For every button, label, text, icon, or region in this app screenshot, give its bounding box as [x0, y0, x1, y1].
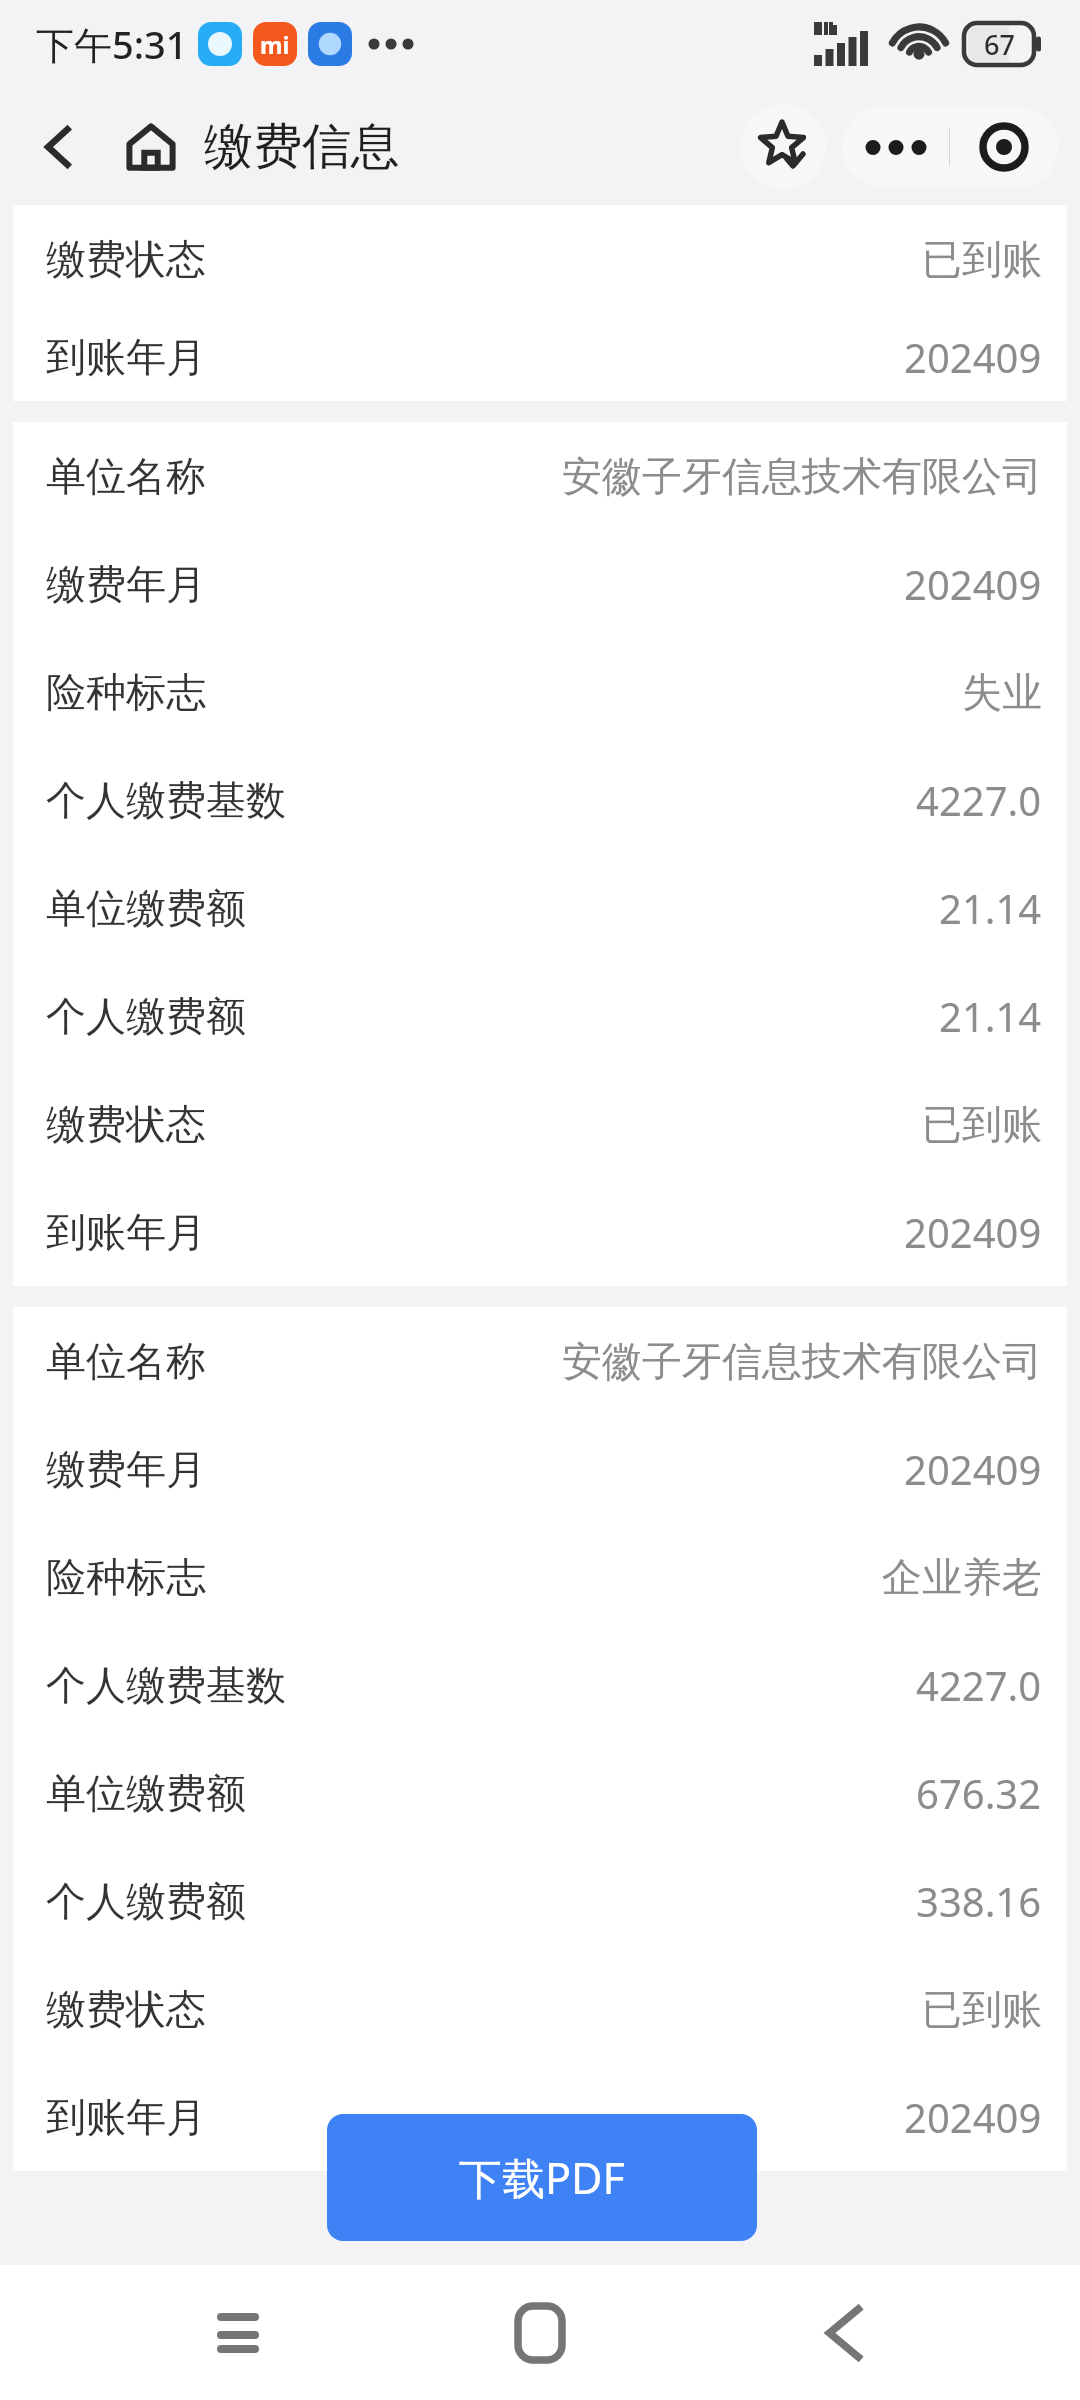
- button[interactable]: 个人缴费基数: [13, 1631, 1067, 1739]
- button[interactable]: More options: [842, 106, 949, 188]
- staticText: 下午5:31: [36, 18, 188, 70]
- button[interactable]: 险种标志: [13, 638, 1067, 746]
- button[interactable]: 缴费状态: [13, 1070, 1067, 1178]
- button[interactable]: 缴费年月: [13, 1415, 1067, 1523]
- staticText: 338.16: [916, 1874, 1042, 1928]
- button[interactable]: 单位缴费额: [13, 1739, 1067, 1847]
- button[interactable]: Recent apps: [173, 2268, 303, 2398]
- staticText: 21.14: [939, 881, 1042, 935]
- staticText: 险种标志: [46, 1552, 206, 1602]
- staticText: 险种标志: [46, 667, 206, 717]
- staticText: 202409: [904, 557, 1042, 611]
- button[interactable]: Close: [950, 106, 1058, 188]
- button[interactable]: 个人缴费额: [13, 962, 1067, 1070]
- staticText: 缴费状态: [46, 1984, 206, 2034]
- staticText: 到账年月: [46, 332, 206, 382]
- button[interactable]: 到账年月: [13, 1178, 1067, 1286]
- button[interactable]: 缴费年月: [13, 530, 1067, 638]
- staticText: 个人缴费额: [46, 991, 246, 1041]
- button[interactable]: 缴费状态: [13, 205, 1067, 313]
- staticText: 67: [984, 26, 1015, 63]
- staticText: 单位缴费额: [46, 883, 246, 933]
- button[interactable]: 单位名称: [13, 422, 1067, 530]
- staticText: 已到账: [922, 1984, 1042, 2034]
- button[interactable]: 险种标志: [13, 1523, 1067, 1631]
- button[interactable]: Home: [112, 108, 190, 186]
- button[interactable]: 个人缴费基数: [13, 746, 1067, 854]
- staticText: 单位名称: [46, 1336, 206, 1386]
- staticText: 202409: [904, 2090, 1042, 2144]
- button[interactable]: 个人缴费额: [13, 1847, 1067, 1955]
- staticText: 安徽子牙信息技术有限公司: [562, 1336, 1042, 1386]
- staticText: mi: [260, 29, 290, 60]
- staticText: 缴费状态: [46, 234, 206, 284]
- staticText: 到账年月: [46, 2092, 206, 2142]
- staticText: 个人缴费基数: [46, 1660, 286, 1710]
- staticText: 单位缴费额: [46, 1768, 246, 1818]
- staticText: 202409: [904, 1205, 1042, 1259]
- staticText: 已到账: [922, 234, 1042, 284]
- staticText: 缴费年月: [46, 559, 206, 609]
- staticText: 下载PDF: [459, 2148, 625, 2207]
- button[interactable]: 到账年月: [13, 2063, 1067, 2171]
- staticText: 安徽子牙信息技术有限公司: [562, 451, 1042, 501]
- button[interactable]: Home: [475, 2268, 605, 2398]
- staticText: 202409: [904, 330, 1042, 384]
- staticText: 个人缴费额: [46, 1876, 246, 1926]
- staticText: 失业: [962, 667, 1042, 717]
- staticText: 4227.0: [916, 1658, 1042, 1712]
- staticText: 已到账: [922, 1099, 1042, 1149]
- button[interactable]: 单位名称: [13, 1307, 1067, 1415]
- button[interactable]: Back: [778, 2268, 908, 2398]
- button[interactable]: 缴费状态: [13, 1955, 1067, 2063]
- staticText: 缴费状态: [46, 1099, 206, 1149]
- staticText: 21.14: [939, 989, 1042, 1043]
- staticText: 单位名称: [46, 451, 206, 501]
- button[interactable]: Favorite: [740, 104, 826, 190]
- staticText: 缴费年月: [46, 1444, 206, 1494]
- button[interactable]: Back: [20, 108, 98, 186]
- staticText: 企业养老: [882, 1552, 1042, 1602]
- staticText: 个人缴费基数: [46, 775, 286, 825]
- button[interactable]: 下载PDF: [327, 2114, 757, 2241]
- staticText: 4227.0: [916, 773, 1042, 827]
- staticText: 缴费信息: [204, 116, 400, 178]
- staticText: 202409: [904, 1442, 1042, 1496]
- button[interactable]: 单位缴费额: [13, 854, 1067, 962]
- staticText: 676.32: [916, 1766, 1042, 1820]
- staticText: 到账年月: [46, 1207, 206, 1257]
- button[interactable]: 到账年月: [13, 313, 1067, 401]
